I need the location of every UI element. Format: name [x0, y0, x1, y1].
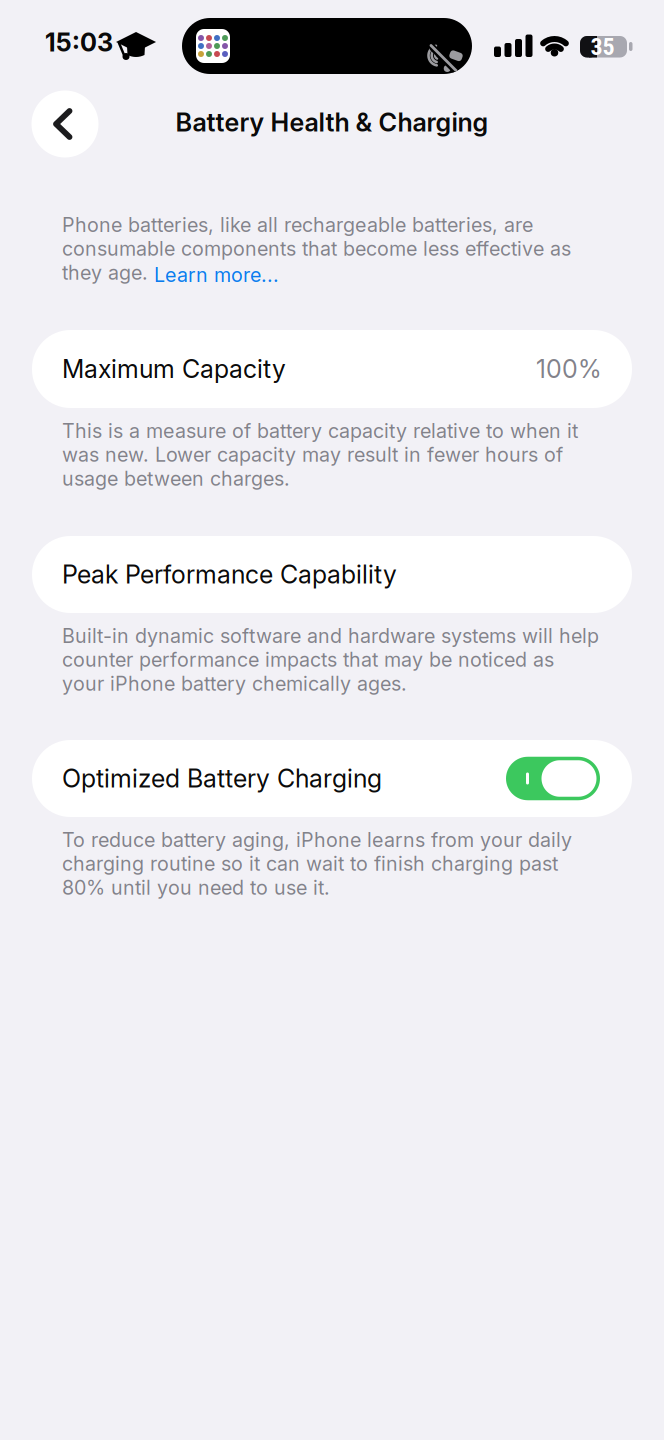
button[interactable]: Back: [31, 90, 98, 157]
staticText: 15:03: [45, 27, 113, 58]
staticText: This is a measure of battery capacity re…: [62, 419, 578, 490]
staticText: Peak Performance Capability: [62, 559, 397, 590]
button[interactable]: Learn more...: [154, 263, 279, 287]
staticText: Optimized Battery Charging: [62, 763, 382, 794]
staticText: To reduce battery aging, iPhone learns f…: [62, 828, 572, 899]
staticText: Phone batteries, like all rechargeable b…: [62, 213, 571, 284]
button[interactable]: Optimized Battery Charging: [506, 757, 600, 800]
staticText: Built-in dynamic software and hardware s…: [62, 624, 599, 695]
staticText: Learn more...: [154, 263, 279, 287]
staticText: 100%: [536, 354, 602, 384]
staticText: Battery Health & Charging: [175, 107, 488, 138]
staticText: Maximum Capacity: [62, 354, 286, 384]
staticText: 35: [590, 33, 614, 61]
